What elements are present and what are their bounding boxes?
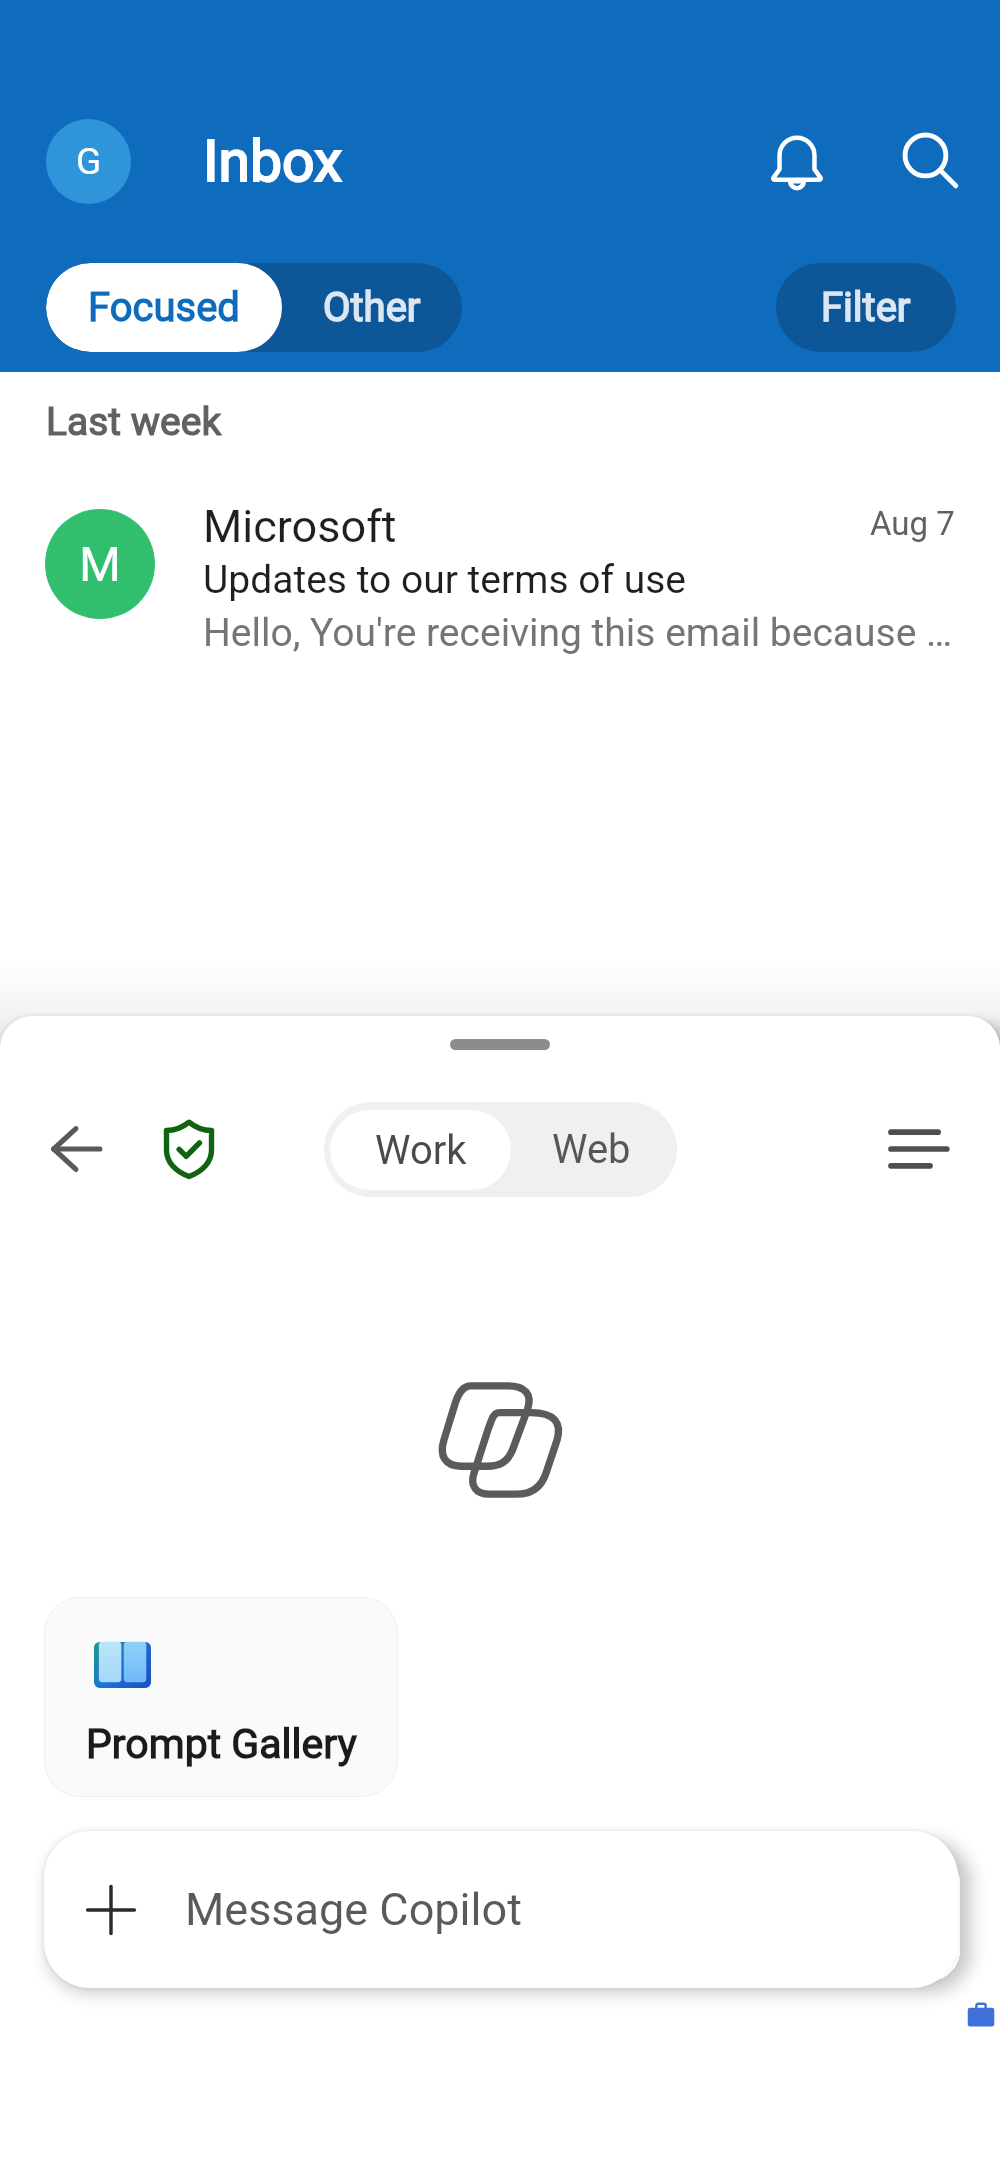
button[interactable]: Notifications [742, 106, 852, 216]
staticText: Web [552, 1126, 631, 1173]
staticText: Message Copilot [185, 1883, 522, 1936]
button[interactable]: Other [282, 263, 462, 352]
staticText: Inbox [203, 128, 343, 195]
staticText: Focused [88, 284, 240, 331]
button[interactable]: Search [876, 106, 986, 216]
button[interactable]: Account [46, 119, 131, 204]
staticText: Last week [46, 399, 222, 445]
button[interactable]: M [0, 509, 1000, 665]
staticText: Filter [821, 284, 911, 331]
button[interactable]: Work [330, 1110, 511, 1190]
button[interactable]: Back [24, 1095, 132, 1203]
staticText: Other [323, 284, 421, 331]
button[interactable]: Message Copilot [44, 1831, 958, 1988]
button[interactable]: Prompt Gallery [44, 1597, 398, 1797]
staticText: M [79, 536, 121, 592]
button[interactable]: Web [511, 1102, 677, 1197]
staticText: Hello, You're receiving this email becau… [203, 610, 953, 656]
button[interactable]: Filter [776, 263, 956, 352]
staticText: Updates to our terms of use [203, 557, 687, 603]
staticText: Work [375, 1127, 467, 1174]
button[interactable]: Focused [46, 263, 282, 352]
staticText: Prompt Gallery [86, 1720, 357, 1768]
staticText: Microsoft [203, 500, 870, 553]
button[interactable]: Menu [864, 1095, 972, 1203]
button[interactable]: Protected [135, 1095, 243, 1203]
staticText: G [76, 140, 102, 183]
staticText: Aug 7 [870, 504, 955, 543]
